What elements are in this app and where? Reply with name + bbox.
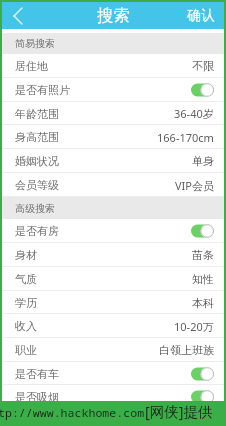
button[interactable]: 确认 <box>178 3 224 29</box>
staticText: [网侠]提供 <box>145 401 213 421</box>
staticText: 确认 <box>187 7 215 25</box>
staticText: 收入 <box>15 319 37 333</box>
staticText: 高级搜索 <box>15 202 55 215</box>
button[interactable]: 简易搜索 <box>2 33 224 54</box>
staticText: 职业 <box>15 343 37 357</box>
button[interactable]: Toggle switch <box>191 224 214 238</box>
button[interactable]: 气质 <box>2 267 224 291</box>
staticText: 知性 <box>192 272 214 286</box>
staticText: 搜索 <box>97 5 130 26</box>
button[interactable]: Toggle switch <box>191 83 214 97</box>
staticText: 不限 <box>192 59 214 73</box>
staticText: 是否吸烟 <box>15 390 59 404</box>
button[interactable]: 是否有照片 <box>2 78 224 102</box>
button[interactable]: Toggle switch <box>191 390 214 404</box>
staticText: 单身 <box>192 154 214 168</box>
button[interactable]: 是否有车 <box>2 362 224 385</box>
button[interactable]: 身材 <box>2 243 224 267</box>
staticText: 是否有照片 <box>15 83 70 97</box>
button[interactable]: 婚姻状况 <box>2 149 224 173</box>
button[interactable]: 是否有房 <box>2 219 224 243</box>
button[interactable]: 居住地 <box>2 54 224 78</box>
button[interactable]: 身高范围 <box>2 125 224 149</box>
button[interactable]: 年龄范围 <box>2 102 224 125</box>
staticText: 年龄范围 <box>15 107 59 121</box>
button[interactable]: 会员等级 <box>2 173 224 197</box>
staticText: 苗条 <box>192 248 214 262</box>
staticText: VIP会员 <box>175 178 214 193</box>
staticText: 气质 <box>15 272 37 286</box>
button[interactable]: 高级搜索 <box>2 197 224 219</box>
button[interactable]: 学历 <box>2 291 224 314</box>
staticText: 36-40岁 <box>174 106 214 121</box>
staticText: 简易搜索 <box>15 37 55 50</box>
button[interactable]: 职业 <box>2 338 224 362</box>
staticText: 会员等级 <box>15 178 59 192</box>
staticText: tp://www.hackhome.com <box>0 405 145 421</box>
staticText: 身材 <box>15 248 37 262</box>
staticText: 居住地 <box>15 59 48 73</box>
staticText: 是否有房 <box>15 224 59 238</box>
button[interactable]: 收入 <box>2 314 224 338</box>
staticText: 是否有车 <box>15 367 59 381</box>
staticText: 10-20万 <box>174 319 214 334</box>
button[interactable]: Toggle switch <box>191 367 214 381</box>
button[interactable]: Back <box>2 2 34 29</box>
staticText: 身高范围 <box>15 130 59 144</box>
staticText: 本科 <box>192 296 214 310</box>
staticText: 婚姻状况 <box>15 154 59 168</box>
staticText: 学历 <box>15 296 37 310</box>
button[interactable]: 是否吸烟 <box>2 385 224 409</box>
staticText: 166-170cm <box>157 130 214 145</box>
staticText: 白领上班族 <box>159 343 214 357</box>
